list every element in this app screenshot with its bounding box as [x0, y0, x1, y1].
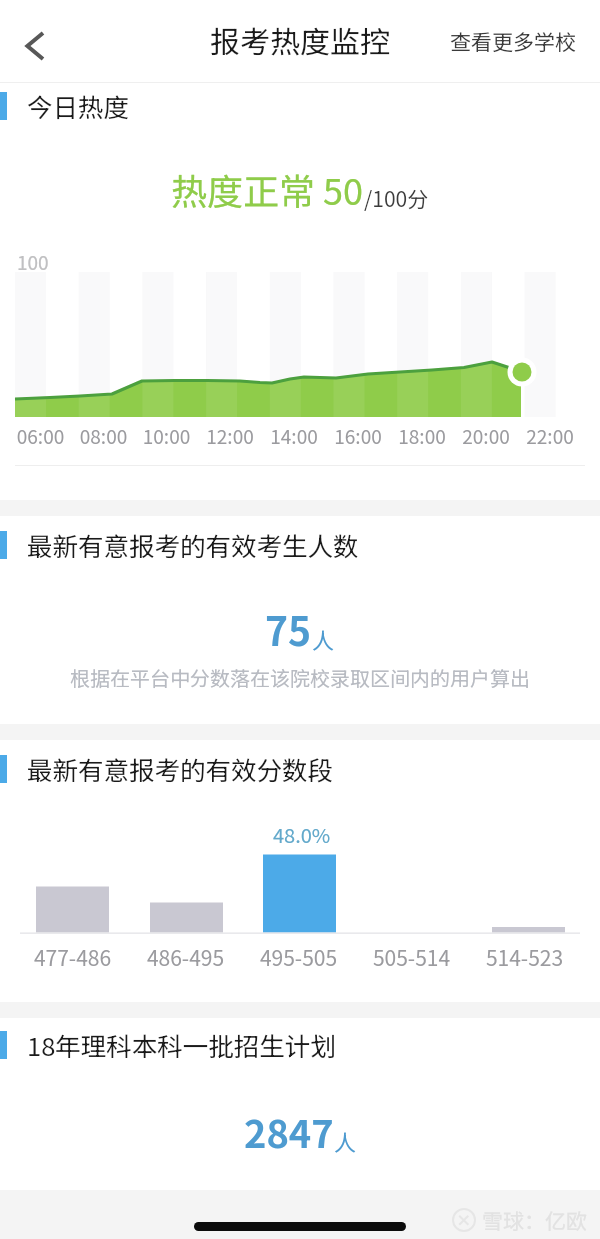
staticText: 10:00: [135, 422, 198, 450]
staticText: 2847: [244, 1104, 334, 1159]
staticText: 最新有意报考的有效考生人数: [27, 526, 359, 563]
staticText: 最新有意报考的有效分数段: [27, 750, 334, 787]
staticText: 22:00: [518, 422, 582, 450]
staticText: 报考热度监控: [210, 18, 390, 61]
staticText: 486-495: [129, 942, 242, 972]
staticText: 18年理科本科一批招生计划: [27, 1026, 336, 1063]
staticText: 08:00: [72, 422, 135, 450]
staticText: 20:00: [454, 422, 518, 450]
staticText: 477-486: [16, 942, 129, 972]
staticText: 查看更多学校: [450, 26, 576, 56]
staticText: 人: [312, 623, 335, 655]
button[interactable]: Back: [0, 0, 72, 81]
staticText: 人: [334, 1125, 357, 1157]
staticText: 495-505: [242, 942, 355, 972]
button[interactable]: 查看更多学校: [450, 0, 576, 81]
staticText: 514-523: [468, 942, 581, 972]
staticText: 雪球：亿欧: [482, 1205, 587, 1235]
staticText: 100: [17, 248, 49, 276]
staticText: 热度正常 50: [171, 163, 364, 215]
staticText: 今日热度: [27, 87, 130, 124]
staticText: 根据在平台中分数落在该院校录取区间内的用户算出: [0, 663, 600, 692]
staticText: 75: [265, 601, 312, 657]
staticText: 505-514: [355, 942, 468, 972]
staticText: 18:00: [390, 422, 454, 450]
staticText: 06:00: [9, 422, 72, 450]
staticText: 12:00: [198, 422, 262, 450]
staticText: 48.0%: [273, 820, 331, 849]
staticText: 14:00: [262, 422, 326, 450]
staticText: 16:00: [326, 422, 390, 450]
staticText: /100分: [364, 183, 429, 213]
